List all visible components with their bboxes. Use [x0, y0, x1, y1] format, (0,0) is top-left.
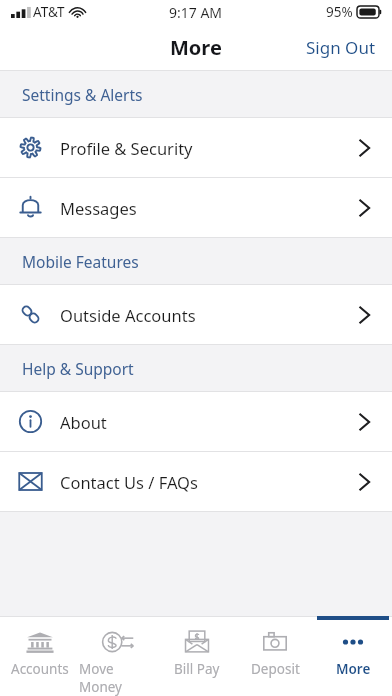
staticText: Move Money	[79, 660, 158, 696]
staticText: More	[336, 660, 371, 678]
staticText: 95%	[326, 3, 353, 21]
staticText: Contact Us / FAQs	[60, 471, 198, 493]
button[interactable]: Sign Out	[290, 28, 392, 67]
button[interactable]: Bill Pay	[158, 616, 236, 696]
staticText: Sign Out	[306, 36, 376, 59]
button[interactable]: Contact Us / FAQs	[0, 452, 392, 511]
staticText: 9:17 AM	[169, 3, 223, 22]
staticText: Deposit	[251, 660, 300, 678]
staticText: More	[170, 34, 222, 61]
button[interactable]: Deposit	[236, 616, 314, 696]
staticText: About	[60, 411, 107, 433]
button[interactable]: Messages	[0, 178, 392, 237]
staticText: Settings & Alerts	[22, 84, 143, 105]
staticText: AT&T	[33, 3, 65, 21]
button[interactable]: About	[0, 392, 392, 451]
staticText: Help & Support	[22, 358, 134, 379]
button[interactable]: Move Money	[79, 616, 158, 696]
button[interactable]: Accounts	[0, 616, 79, 696]
button[interactable]: Profile & Security	[0, 118, 392, 177]
staticText: Messages	[60, 197, 137, 219]
button[interactable]: More	[314, 616, 392, 696]
staticText: Outside Accounts	[60, 304, 196, 326]
staticText: Mobile Features	[22, 251, 139, 272]
staticText: Accounts	[11, 660, 69, 678]
staticText: Profile & Security	[60, 137, 193, 159]
button[interactable]: Outside Accounts	[0, 285, 392, 344]
staticText: Bill Pay	[174, 660, 220, 678]
